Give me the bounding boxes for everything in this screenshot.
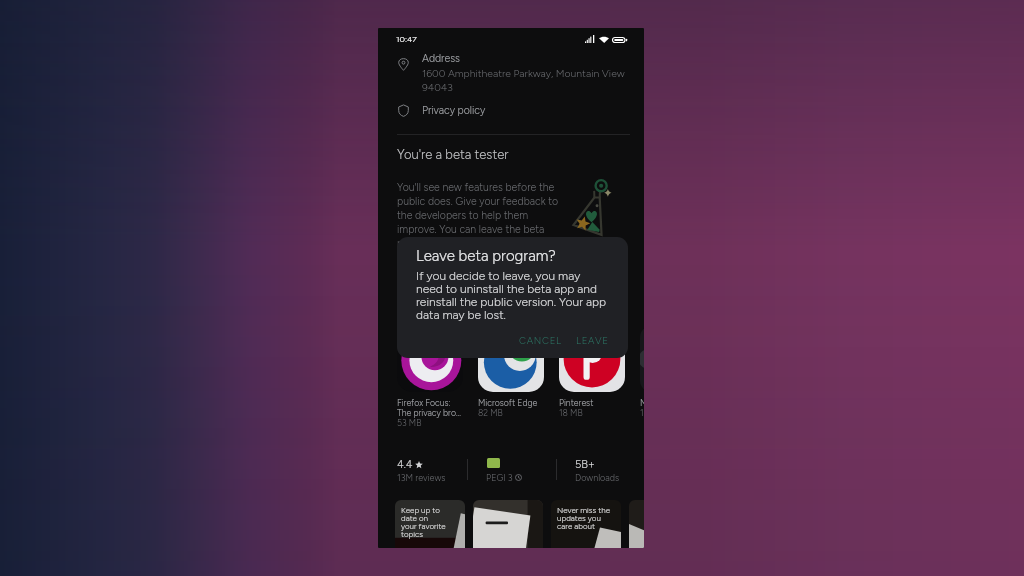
button[interactable] [473,500,543,548]
staticText: PEGI 3 [486,472,513,483]
staticText: 4.4 [397,458,413,471]
staticText: If you decide to leave, you may need to … [416,269,608,322]
button[interactable]: Privacy policy [378,100,644,122]
staticText: Never miss the updates you care about [557,505,611,531]
staticText: Firefox Focus: The privacy bro... [397,398,461,418]
staticText: Pinterest [559,398,594,408]
staticText: Address [422,52,460,65]
button[interactable]: Keep up to date on your favorite topics [395,500,465,548]
button[interactable]: Never miss the updates you care about [551,500,621,548]
staticText: LEAVE [576,335,609,347]
staticText: Downloads [575,472,620,483]
staticText: 10:47 [396,34,417,44]
button[interactable]: Pinterest [559,326,625,418]
staticText: You'll see new features before the publi… [397,181,559,250]
button[interactable]: Firefox Focus: The privacy bro... [397,326,463,428]
staticText: 13 [640,408,644,418]
staticText: Keep up to date on your favorite topics [401,505,446,539]
staticText: Leave beta program? [416,247,556,265]
staticText: 18 MB [559,408,583,418]
staticText: CANCEL [519,335,562,347]
button[interactable]: Address [378,52,644,102]
staticText: You're a beta tester [397,147,509,163]
button[interactable]: LEAVE [571,332,614,350]
button[interactable]: CANCEL [514,332,567,350]
staticText: 5B+ [575,458,595,471]
staticText: Privacy policy [422,104,486,117]
staticText: 53 MB [397,418,422,428]
staticText: 82 MB [478,408,503,418]
staticText: Me [640,398,644,408]
button[interactable]: Microsoft Edge [478,326,544,418]
staticText: 13M reviews [397,472,446,483]
staticText: Microsoft Edge [478,398,538,408]
staticText: 1600 Amphitheatre Parkway, Mountain View… [422,67,630,94]
button[interactable]: Me [640,326,644,418]
button[interactable] [629,500,644,548]
